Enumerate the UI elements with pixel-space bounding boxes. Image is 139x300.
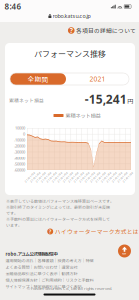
staticText: 21/01/04 [56,175,70,179]
staticText: -50000 [14,161,25,167]
staticText: 累積ネット損益 [9,97,44,104]
staticText: 21/01/04 [110,175,124,179]
staticText: 金融商品取引法に基づく表示｜勧誘方針 [5,270,77,276]
staticText: 運用開始の流れ｜各種書類｜投資の考え方｜特徴 [5,257,93,263]
staticText: -30000 [14,149,25,155]
staticText: 21/01/04 [34,175,48,179]
staticText: 21/01/04 [61,175,75,179]
staticText: 21/01/04 [39,175,53,179]
staticText: 21/01/04 [83,175,97,179]
staticText: ? [70,26,73,35]
staticText: ? [49,228,52,235]
staticText: -15,241 [85,91,127,107]
staticText: 円 [127,96,133,105]
staticText: 累積ネット損益 [65,112,100,119]
staticText: です。 [6,210,18,216]
staticText: 全期間 [27,74,48,84]
staticText: サイトマップ｜特定商取引法に基づく表記 [5,283,81,289]
staticText: 21/01/04 [121,175,135,179]
staticText: ※表示している数値はパフォーマンス推移算出ベースです。 [6,198,114,204]
staticText: 21/01/04 [45,175,59,179]
staticText: 21/01/04 [77,175,91,179]
staticText: 21/01/04 [72,175,86,179]
staticText: -20000 [14,143,25,149]
staticText: 21/01/04 [50,175,64,179]
staticText: TOP [122,252,127,255]
staticText: 8:46 [4,1,21,12]
staticText: -60000 [14,167,25,173]
staticText: います。 [6,222,22,228]
staticText: パフォーマンス推移 [34,48,106,59]
staticText: 21/01/04 [94,175,108,179]
staticText: ※取引終了のタイミングによっては、最新の取引が未反映 [6,204,110,210]
staticText: ハイウォーターマーク方式とは [55,227,139,236]
staticText: 21/01/04 [99,175,113,179]
staticText: © Folsom Securities Co., Ltd. All rights… [27,286,112,291]
staticText: 21/01/04 [88,175,102,179]
button[interactable]: Scroll to top [118,244,131,257]
staticText: ※手数料の算出にはハイウォーターマーク方式を採用して [6,216,110,222]
staticText: 21/01/04 [105,175,119,179]
staticText: robo.アユム公式情報配信中 [5,251,57,257]
staticText: robo.katsu.co.jp [53,12,91,20]
staticText: 各項目の詳細について [76,26,136,35]
staticText: よくある質問｜お問い合わせ｜運営会社 [5,264,77,270]
staticText: 0 [23,131,25,137]
staticText: -40000 [14,155,25,161]
staticText: 21/01/04 [66,175,80,179]
button[interactable]: 全期間 [10,73,66,85]
button[interactable]: ? [46,227,139,236]
staticText: 21/01/04 [23,175,37,179]
button[interactable]: 2021 [66,73,129,85]
staticText: 個人情報保護方針｜ご利用規約｜リスクと手数料 [5,277,93,283]
staticText: -10000 [14,137,25,143]
staticText: 10000 [15,125,25,131]
staticText: 21/01/04 [28,175,42,179]
button[interactable]: robo.katsu.co.jp [0,11,139,21]
staticText: 2021 [89,75,105,83]
button[interactable]: ? [67,25,137,36]
staticText: 21/01/04 [116,175,130,179]
